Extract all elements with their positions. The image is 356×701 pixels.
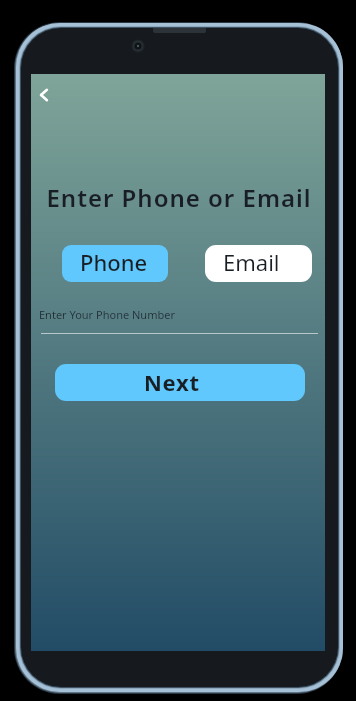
- button[interactable]: Email: [205, 245, 312, 282]
- button[interactable]: Next: [55, 364, 305, 401]
- staticText: Email: [223, 247, 280, 277]
- staticText: Next: [144, 367, 200, 397]
- button[interactable]: Phone: [62, 245, 168, 282]
- button[interactable]: Enter Your Phone Number: [39, 307, 175, 322]
- staticText: Enter Phone or Email: [32, 181, 326, 214]
- staticText: Phone: [80, 247, 148, 277]
- button[interactable]: Back: [25, 76, 62, 113]
